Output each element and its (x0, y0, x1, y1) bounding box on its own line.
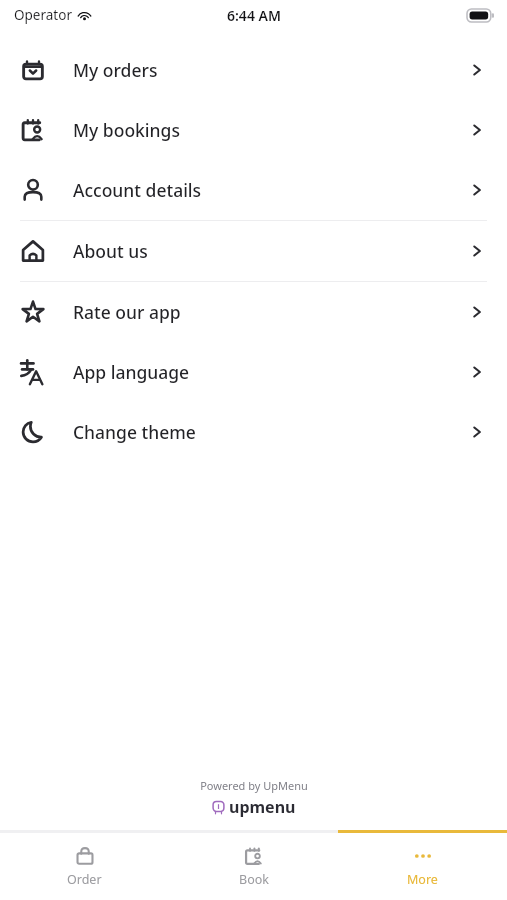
staticText: More (407, 871, 438, 888)
staticText: Book (239, 871, 269, 888)
staticText: 6:44 AM (227, 6, 281, 25)
staticText: Change theme (73, 420, 196, 444)
button[interactable]: My bookings (0, 100, 507, 160)
button[interactable]: About us (0, 221, 507, 281)
staticText: My bookings (73, 118, 180, 142)
staticText: Powered by UpMenu (200, 778, 308, 793)
button[interactable]: Rate our app (0, 282, 507, 342)
staticText: upmenu (229, 796, 296, 818)
button[interactable]: My orders (0, 40, 507, 100)
staticText: Operator (14, 6, 72, 24)
button[interactable]: App language (0, 342, 507, 402)
button[interactable]: More (338, 833, 507, 900)
staticText: App language (73, 360, 190, 384)
button[interactable]: Book (169, 833, 338, 900)
staticText: Rate our app (73, 300, 181, 324)
staticText: Order (67, 871, 102, 888)
staticText: Account details (73, 178, 202, 202)
staticText: My orders (73, 58, 158, 82)
button[interactable]: Account details (0, 160, 507, 220)
staticText: About us (73, 239, 148, 263)
button[interactable]: Order (0, 833, 169, 900)
button[interactable]: Change theme (0, 402, 507, 462)
